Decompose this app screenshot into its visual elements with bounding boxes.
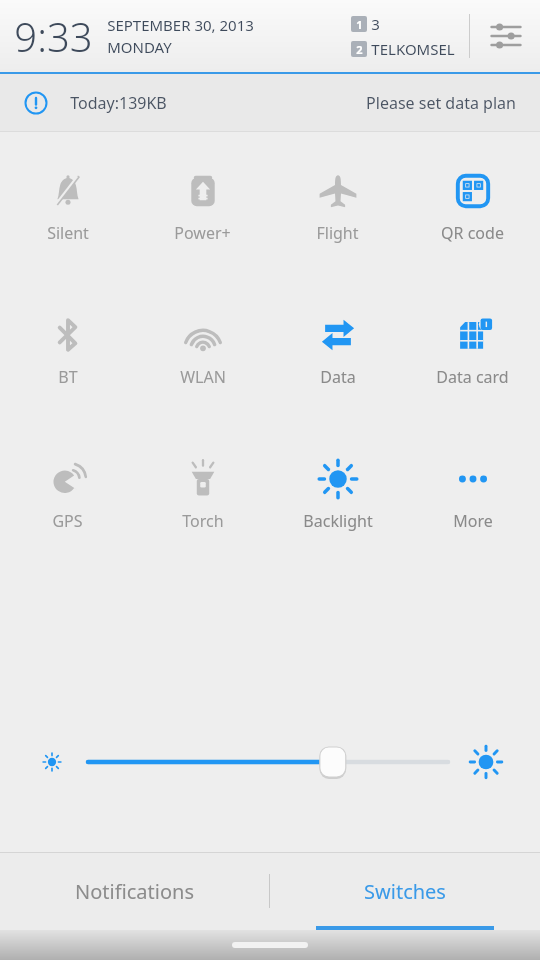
staticText: BT [58,366,78,388]
staticText: 2 [356,42,363,57]
staticText: TELKOMSEL [371,39,455,59]
staticText: 1 [356,17,363,32]
staticText: WLAN [180,366,226,388]
button[interactable]: Data card [405,308,540,392]
staticText: Please set data plan [366,92,516,114]
staticText: Backlight [303,510,373,532]
button[interactable]: Data [270,308,405,392]
button[interactable]: QR code [405,164,540,248]
button[interactable]: Notifications [0,852,269,930]
staticText: Silent [47,222,89,244]
staticText: Today:139KB [70,92,167,114]
button[interactable]: Today:139KB [0,74,540,131]
staticText: More [453,510,493,532]
button[interactable]: Torch [135,452,270,536]
button[interactable]: More [405,452,540,536]
staticText: QR code [441,222,504,244]
staticText: SEPTEMBER 30, 2013 [107,15,254,35]
button[interactable]: BT [0,308,135,392]
staticText: Switches [364,878,446,905]
staticText: Torch [182,510,224,532]
button[interactable]: Brightness level [88,742,448,782]
staticText: Data [320,366,356,388]
button[interactable]: Settings [482,12,530,60]
button[interactable]: Switches [270,852,540,930]
staticText: Notifications [75,878,194,905]
button[interactable]: WLAN [135,308,270,392]
button[interactable]: GPS [0,452,135,536]
button[interactable]: Power+ [135,164,270,248]
staticText: MONDAY [107,37,172,57]
button[interactable]: Maximum brightness [462,738,510,786]
button[interactable]: Silent [0,164,135,248]
staticText: Flight [316,222,359,244]
button[interactable]: Flight [270,164,405,248]
staticText: 9:33 [14,9,93,63]
button[interactable]: Backlight [270,452,405,536]
staticText: Data card [436,366,509,388]
staticText: GPS [52,510,83,532]
staticText: Power+ [174,222,231,244]
button[interactable]: Minimum brightness [30,740,74,784]
staticText: 3 [371,14,380,34]
